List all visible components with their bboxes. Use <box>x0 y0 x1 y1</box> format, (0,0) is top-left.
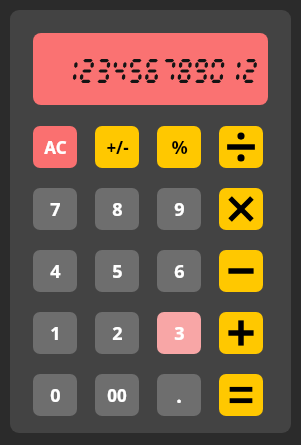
button[interactable]: % <box>157 126 201 168</box>
button[interactable]: 2 <box>95 312 139 354</box>
staticText: +/- <box>106 136 129 159</box>
staticText: . <box>176 382 182 409</box>
button[interactable]: . <box>157 374 201 416</box>
button[interactable]: Add <box>219 312 263 354</box>
button[interactable]: 6 <box>157 250 201 292</box>
staticText: % <box>171 135 188 160</box>
button[interactable]: 5 <box>95 250 139 292</box>
button[interactable]: 8 <box>95 188 139 230</box>
button[interactable]: 9 <box>157 188 201 230</box>
staticText: 1 <box>50 321 61 346</box>
staticText: AC <box>44 136 67 159</box>
button[interactable]: 4 <box>33 250 77 292</box>
button[interactable]: 00 <box>95 374 139 416</box>
staticText: 3 <box>174 321 185 346</box>
button[interactable]: Divide <box>219 126 263 168</box>
staticText: 7 <box>50 197 61 222</box>
staticText: 0 <box>50 383 61 408</box>
button[interactable]: Multiply <box>219 188 263 230</box>
button[interactable]: 7 <box>33 188 77 230</box>
staticText: 2 <box>112 321 123 346</box>
staticText: 9 <box>174 197 185 222</box>
staticText: 8 <box>112 197 123 222</box>
button[interactable]: Equals <box>219 374 263 416</box>
staticText: 4 <box>50 259 61 284</box>
staticText: 6 <box>174 259 185 284</box>
button[interactable]: 3 <box>157 312 201 354</box>
button[interactable]: AC <box>33 126 77 168</box>
staticText: 00 <box>107 384 127 407</box>
staticText: 5 <box>112 259 123 284</box>
button[interactable]: 1 <box>33 312 77 354</box>
button[interactable]: 0 <box>33 374 77 416</box>
button[interactable]: Subtract <box>219 250 263 292</box>
button[interactable]: +/- <box>95 126 139 168</box>
